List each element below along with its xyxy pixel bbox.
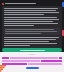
- button[interactable]: [2, 48, 62, 52]
- button[interactable]: Open panel: [62, 2, 64, 7]
- button[interactable]: [26, 67, 39, 69]
- button[interactable]: Alerts: [62, 30, 64, 36]
